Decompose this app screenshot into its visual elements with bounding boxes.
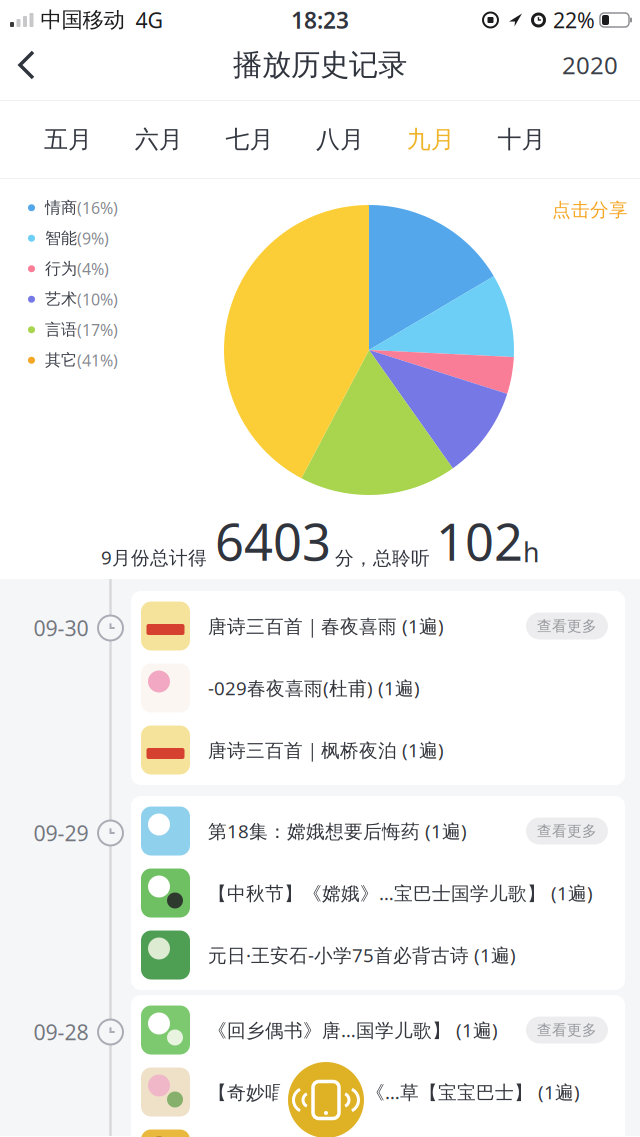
staticText: 【中秋节】《嫦娥》…宝巴士国学儿歌】 (1遍) <box>208 881 593 905</box>
staticText: 十月 <box>497 125 545 154</box>
staticText: 9月份总计得 <box>101 545 207 570</box>
staticText: 言语 <box>45 320 77 340</box>
staticText: 09-28 <box>33 1018 88 1046</box>
button[interactable]: 十月 <box>497 125 545 154</box>
button[interactable]: 五月 <box>44 125 92 154</box>
staticText: h <box>523 534 539 570</box>
staticText: 元日·王安石-小学75首必背古诗 (1遍) <box>208 943 516 967</box>
staticText: 唐诗三百首｜春夜喜雨 (1遍) <box>208 614 444 638</box>
button[interactable]: 查看更多 <box>526 1016 608 1043</box>
staticText: (17%) <box>77 319 118 340</box>
staticText: 《回乡偶书》唐…国学儿歌】 (1遍) <box>208 1018 498 1042</box>
button[interactable]: 九月 <box>407 125 455 154</box>
button[interactable]: 播放节目 <box>141 1129 208 1137</box>
button[interactable]: 点击分享 <box>552 198 628 221</box>
staticText: 分，总聆听 <box>335 547 430 570</box>
button[interactable]: 六月 <box>135 125 183 154</box>
button[interactable]: -029春夜喜雨(杜甫) (1遍) <box>141 663 420 712</box>
staticText: 情商 <box>45 198 77 218</box>
staticText: 102 <box>436 507 523 575</box>
staticText: 唐诗三百首｜枫桥夜泊 (1遍) <box>208 738 444 762</box>
staticText: 艺术 <box>45 289 77 309</box>
staticText: 七月 <box>225 125 273 154</box>
button[interactable]: 八月 <box>316 125 364 154</box>
staticText: 八月 <box>316 125 364 154</box>
button[interactable]: 查看更多 <box>526 612 608 639</box>
button[interactable]: 元日·王安石-小学75首必背古诗 (1遍) <box>141 930 516 979</box>
staticText: 【奇妙唱古诗》小 《…草【宝宝巴士】 (1遍) <box>208 1080 580 1104</box>
button[interactable]: 唐诗三百首｜枫桥夜泊 (1遍) <box>141 725 444 774</box>
staticText: (4%) <box>77 258 109 279</box>
button[interactable]: 七月 <box>225 125 273 154</box>
button[interactable]: 《回乡偶书》唐…国学儿歌】 (1遍) <box>141 1005 498 1054</box>
staticText: 第18集：嫦娥想要后悔药 (1遍) <box>208 819 467 843</box>
button[interactable]: Now Playing <box>277 1051 374 1137</box>
staticText: 六月 <box>135 125 183 154</box>
staticText: 查看更多 <box>537 822 597 840</box>
staticText: 播放历史记录 <box>233 47 407 83</box>
staticText: 智能 <box>45 228 77 248</box>
button[interactable]: 查看更多 <box>526 817 608 844</box>
staticText: 其它 <box>45 350 77 370</box>
staticText: 6403 <box>215 507 331 575</box>
staticText: 4G <box>135 6 163 34</box>
staticText: 2020 <box>562 49 618 81</box>
staticText: 查看更多 <box>537 1021 597 1039</box>
button[interactable]: 【奇妙唱古诗》小 《…草【宝宝巴士】 (1遍) <box>141 1067 580 1116</box>
staticText: -029春夜喜雨(杜甫) (1遍) <box>208 676 420 700</box>
button[interactable]: 唐诗三百首｜春夜喜雨 (1遍) <box>141 601 444 650</box>
staticText: 五月 <box>44 125 92 154</box>
staticText: 09-29 <box>33 819 88 847</box>
staticText: 查看更多 <box>537 617 597 635</box>
staticText: 09-30 <box>33 614 88 642</box>
staticText: 18:23 <box>291 5 349 35</box>
button[interactable]: 【中秋节】《嫦娥》…宝巴士国学儿歌】 (1遍) <box>141 868 593 917</box>
staticText: 九月 <box>407 125 455 154</box>
staticText: 22% <box>553 6 595 34</box>
button[interactable]: 2020 <box>562 49 640 91</box>
button[interactable]: Back <box>0 40 47 100</box>
staticText: (41%) <box>77 350 118 371</box>
staticText: (16%) <box>77 197 118 218</box>
staticText: 行为 <box>45 259 77 279</box>
staticText: 点击分享 <box>552 198 628 221</box>
staticText: (10%) <box>77 289 118 310</box>
button[interactable]: 第18集：嫦娥想要后悔药 (1遍) <box>141 806 467 855</box>
staticText: 中国移动 <box>40 7 124 33</box>
staticText: (9%) <box>77 228 109 249</box>
